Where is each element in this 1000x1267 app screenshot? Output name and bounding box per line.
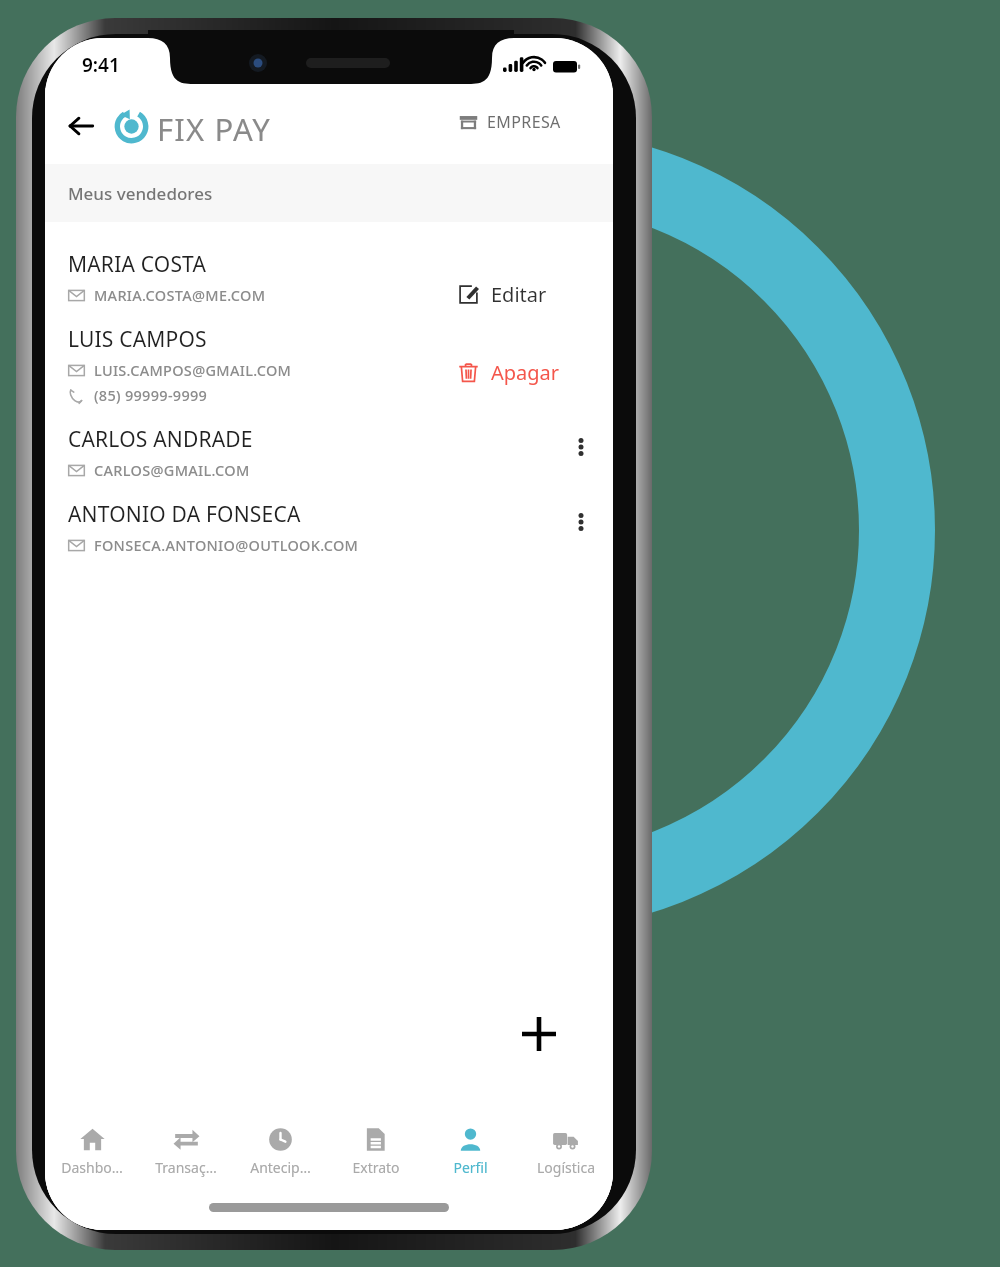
button[interactable]: Transaç… [139, 1116, 233, 1192]
staticText: Transaç… [155, 1158, 217, 1177]
staticText: ANTONIO DA FONSECA [68, 500, 301, 529]
button[interactable]: Antecip… [233, 1116, 328, 1192]
staticText: MARIA.COSTA@ME.COM [94, 285, 266, 305]
button[interactable]: Extrato [328, 1116, 423, 1192]
button[interactable]: LUIS CAMPOS [45, 315, 613, 415]
staticText: CARLOS ANDRADE [68, 425, 253, 454]
staticText: Dashbo… [61, 1158, 123, 1177]
staticText: LUIS.CAMPOS@GMAIL.COM [94, 360, 292, 380]
staticText: Antecip… [250, 1158, 311, 1177]
button[interactable]: More options [561, 427, 601, 467]
staticText: Apagar [491, 359, 560, 386]
button[interactable]: Dashbo… [45, 1116, 139, 1192]
button[interactable]: More options [561, 502, 601, 542]
button[interactable]: Add vendor [489, 984, 589, 1084]
staticText: Perfil [453, 1158, 488, 1177]
staticText: Editar [491, 281, 547, 308]
staticText: 9:41 [82, 52, 120, 78]
staticText: LUIS CAMPOS [68, 325, 207, 354]
button[interactable]: CARLOS ANDRADE [45, 415, 613, 490]
staticText: EMPRESA [487, 111, 561, 133]
staticText: (85) 99999-9999 [94, 385, 208, 405]
staticText: Extrato [352, 1158, 400, 1177]
button[interactable]: ANTONIO DA FONSECA [45, 490, 613, 565]
staticText: Meus vendedores [68, 182, 213, 205]
staticText: FIX PAY [157, 108, 271, 150]
button[interactable]: Perfil [423, 1116, 518, 1192]
staticText: Logística [537, 1158, 595, 1177]
button[interactable]: Editar [430, 256, 590, 333]
button[interactable]: Apagar [430, 333, 590, 411]
button[interactable]: Back [57, 102, 105, 150]
button[interactable]: Logística [518, 1116, 613, 1192]
button[interactable]: MARIA COSTA [45, 240, 613, 315]
staticText: MARIA COSTA [68, 250, 207, 279]
staticText: CARLOS@GMAIL.COM [94, 460, 250, 480]
button[interactable]: EMPRESA [445, 101, 575, 143]
staticText: FONSECA.ANTONIO@OUTLOOK.COM [94, 535, 359, 555]
